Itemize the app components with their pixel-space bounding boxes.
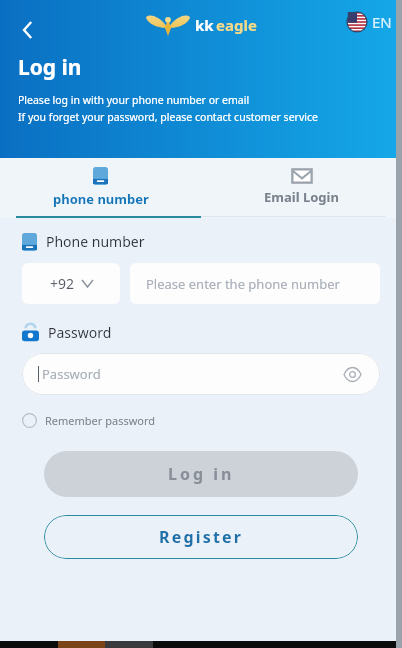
staticText: eagle [216, 15, 257, 35]
button[interactable]: Register [44, 515, 358, 559]
staticText: Remember password [45, 413, 156, 428]
button[interactable]: Email Login [201, 158, 402, 216]
button[interactable]: phone number [0, 158, 201, 216]
staticText: If you forget your password, please cont… [18, 110, 318, 124]
button[interactable]: Log in [44, 451, 358, 497]
button[interactable]: EN [347, 12, 392, 32]
staticText: Password [48, 323, 112, 342]
staticText: kk [195, 15, 214, 35]
staticText: Password [42, 365, 101, 383]
button[interactable]: +92 [22, 263, 120, 304]
button[interactable]: Password [22, 353, 380, 395]
staticText: Phone number [46, 232, 145, 251]
staticText: EN [372, 12, 392, 32]
staticText: Please enter the phone number [146, 275, 340, 293]
staticText: +92 [50, 274, 75, 293]
button[interactable]: Back [10, 12, 46, 48]
staticText: Log in [168, 463, 235, 485]
staticText: Register [159, 526, 244, 548]
staticText: Log in [18, 53, 82, 82]
button[interactable]: Show password [340, 362, 364, 386]
button[interactable]: Remember password [22, 413, 156, 428]
button[interactable]: Please enter the phone number [130, 263, 380, 304]
staticText: Please log in with your phone number or … [18, 93, 250, 107]
staticText: Email Login [264, 188, 339, 206]
staticText: phone number [53, 190, 149, 208]
